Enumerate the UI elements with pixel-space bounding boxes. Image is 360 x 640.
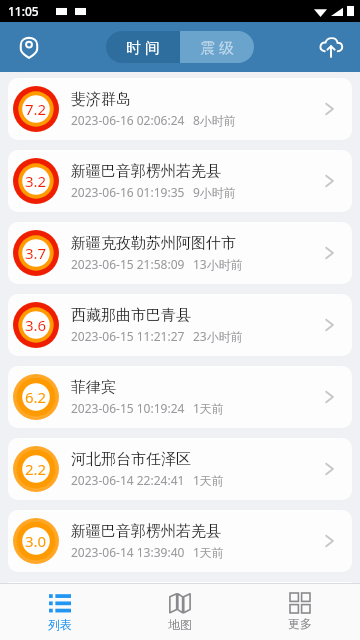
- staticText: 2023-06-16 02:06:24: [71, 112, 185, 128]
- staticText: 2023-06-14 13:39:40: [71, 544, 185, 560]
- button[interactable]: 3.0: [8, 510, 352, 572]
- staticText: 1天前: [193, 544, 224, 560]
- staticText: 3.6: [25, 315, 47, 335]
- button[interactable]: 3.2: [8, 150, 352, 212]
- staticText: 菲律宾: [71, 378, 116, 397]
- staticText: 2023-06-15 11:21:27: [71, 328, 185, 344]
- button[interactable]: 更多: [240, 584, 360, 640]
- staticText: 斐济群岛: [71, 90, 131, 109]
- staticText: 2023-06-15 10:19:24: [71, 400, 185, 416]
- staticText: 新疆克孜勒苏州阿图什市: [71, 234, 236, 253]
- button[interactable]: 6.2: [8, 366, 352, 428]
- staticText: 地图: [168, 617, 192, 632]
- staticText: 河北邢台市任泽区: [71, 450, 191, 469]
- button[interactable]: Upload: [312, 28, 350, 66]
- button[interactable]: 地图: [120, 584, 240, 640]
- staticText: 11:05: [8, 3, 39, 19]
- staticText: 3.0: [25, 531, 47, 551]
- staticText: 新疆巴音郭楞州若羌县: [71, 162, 221, 181]
- staticText: 8小时前: [193, 112, 236, 128]
- staticText: 2.2: [25, 459, 47, 479]
- staticText: 13小时前: [193, 256, 243, 272]
- button[interactable]: 3.6: [8, 294, 352, 356]
- button[interactable]: 3.7: [8, 222, 352, 284]
- staticText: 3.2: [25, 171, 47, 191]
- staticText: 3.7: [25, 243, 47, 263]
- staticText: 2023-06-15 21:58:09: [71, 256, 185, 272]
- button[interactable]: 列表: [0, 584, 120, 640]
- staticText: 1天前: [193, 472, 224, 488]
- staticText: 更多: [288, 616, 312, 631]
- button[interactable]: 时 间: [106, 31, 180, 63]
- staticText: 时 间: [126, 37, 160, 57]
- button[interactable]: 2.2: [8, 438, 352, 500]
- staticText: 新疆巴音郭楞州若羌县: [71, 522, 221, 541]
- staticText: 9小时前: [193, 184, 236, 200]
- staticText: 1天前: [193, 400, 224, 416]
- staticText: 2023-06-16 01:19:35: [71, 184, 185, 200]
- staticText: 2023-06-14 22:24:41: [71, 472, 185, 488]
- staticText: 23小时前: [193, 328, 243, 344]
- staticText: 震 级: [200, 37, 234, 57]
- staticText: 7.2: [25, 99, 47, 119]
- button[interactable]: Location: [10, 28, 48, 66]
- staticText: 西藏那曲市巴青县: [71, 306, 191, 325]
- staticText: 列表: [48, 617, 72, 632]
- button[interactable]: 震 级: [180, 31, 254, 63]
- button[interactable]: 7.2: [8, 78, 352, 140]
- staticText: 6.2: [25, 387, 47, 407]
